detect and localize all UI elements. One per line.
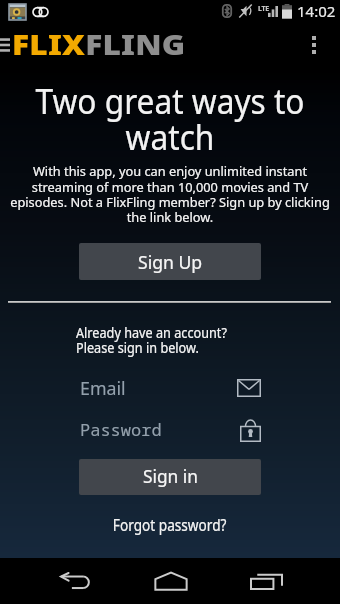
button[interactable]: Sign in	[79, 459, 261, 495]
button[interactable]: Forgot password?	[99, 512, 241, 537]
button[interactable]: Home	[143, 562, 199, 600]
staticText: LTE	[258, 4, 269, 14]
button[interactable]: Password	[80, 416, 261, 442]
button[interactable]: Email	[80, 376, 261, 400]
staticText: Forgot password?	[113, 514, 227, 535]
staticText: Two great ways to watch	[14, 77, 326, 160]
button[interactable]: More options	[301, 32, 327, 58]
staticText: Sign in	[143, 465, 198, 489]
button[interactable]: Back	[48, 562, 104, 600]
staticText: Password	[80, 418, 162, 441]
staticText: With this app, you can enjoy unlimited i…	[8, 162, 332, 226]
staticText: Email	[80, 376, 126, 400]
button[interactable]: Menu	[0, 37, 10, 53]
staticText: Sign Up	[138, 250, 203, 274]
button[interactable]: Recent apps	[238, 562, 294, 600]
staticText: FLIXFLING	[12, 25, 186, 63]
staticText: Already have an account? Please sign in …	[76, 322, 227, 358]
staticText: 14:02	[297, 1, 336, 21]
button[interactable]: Sign Up	[79, 243, 261, 280]
